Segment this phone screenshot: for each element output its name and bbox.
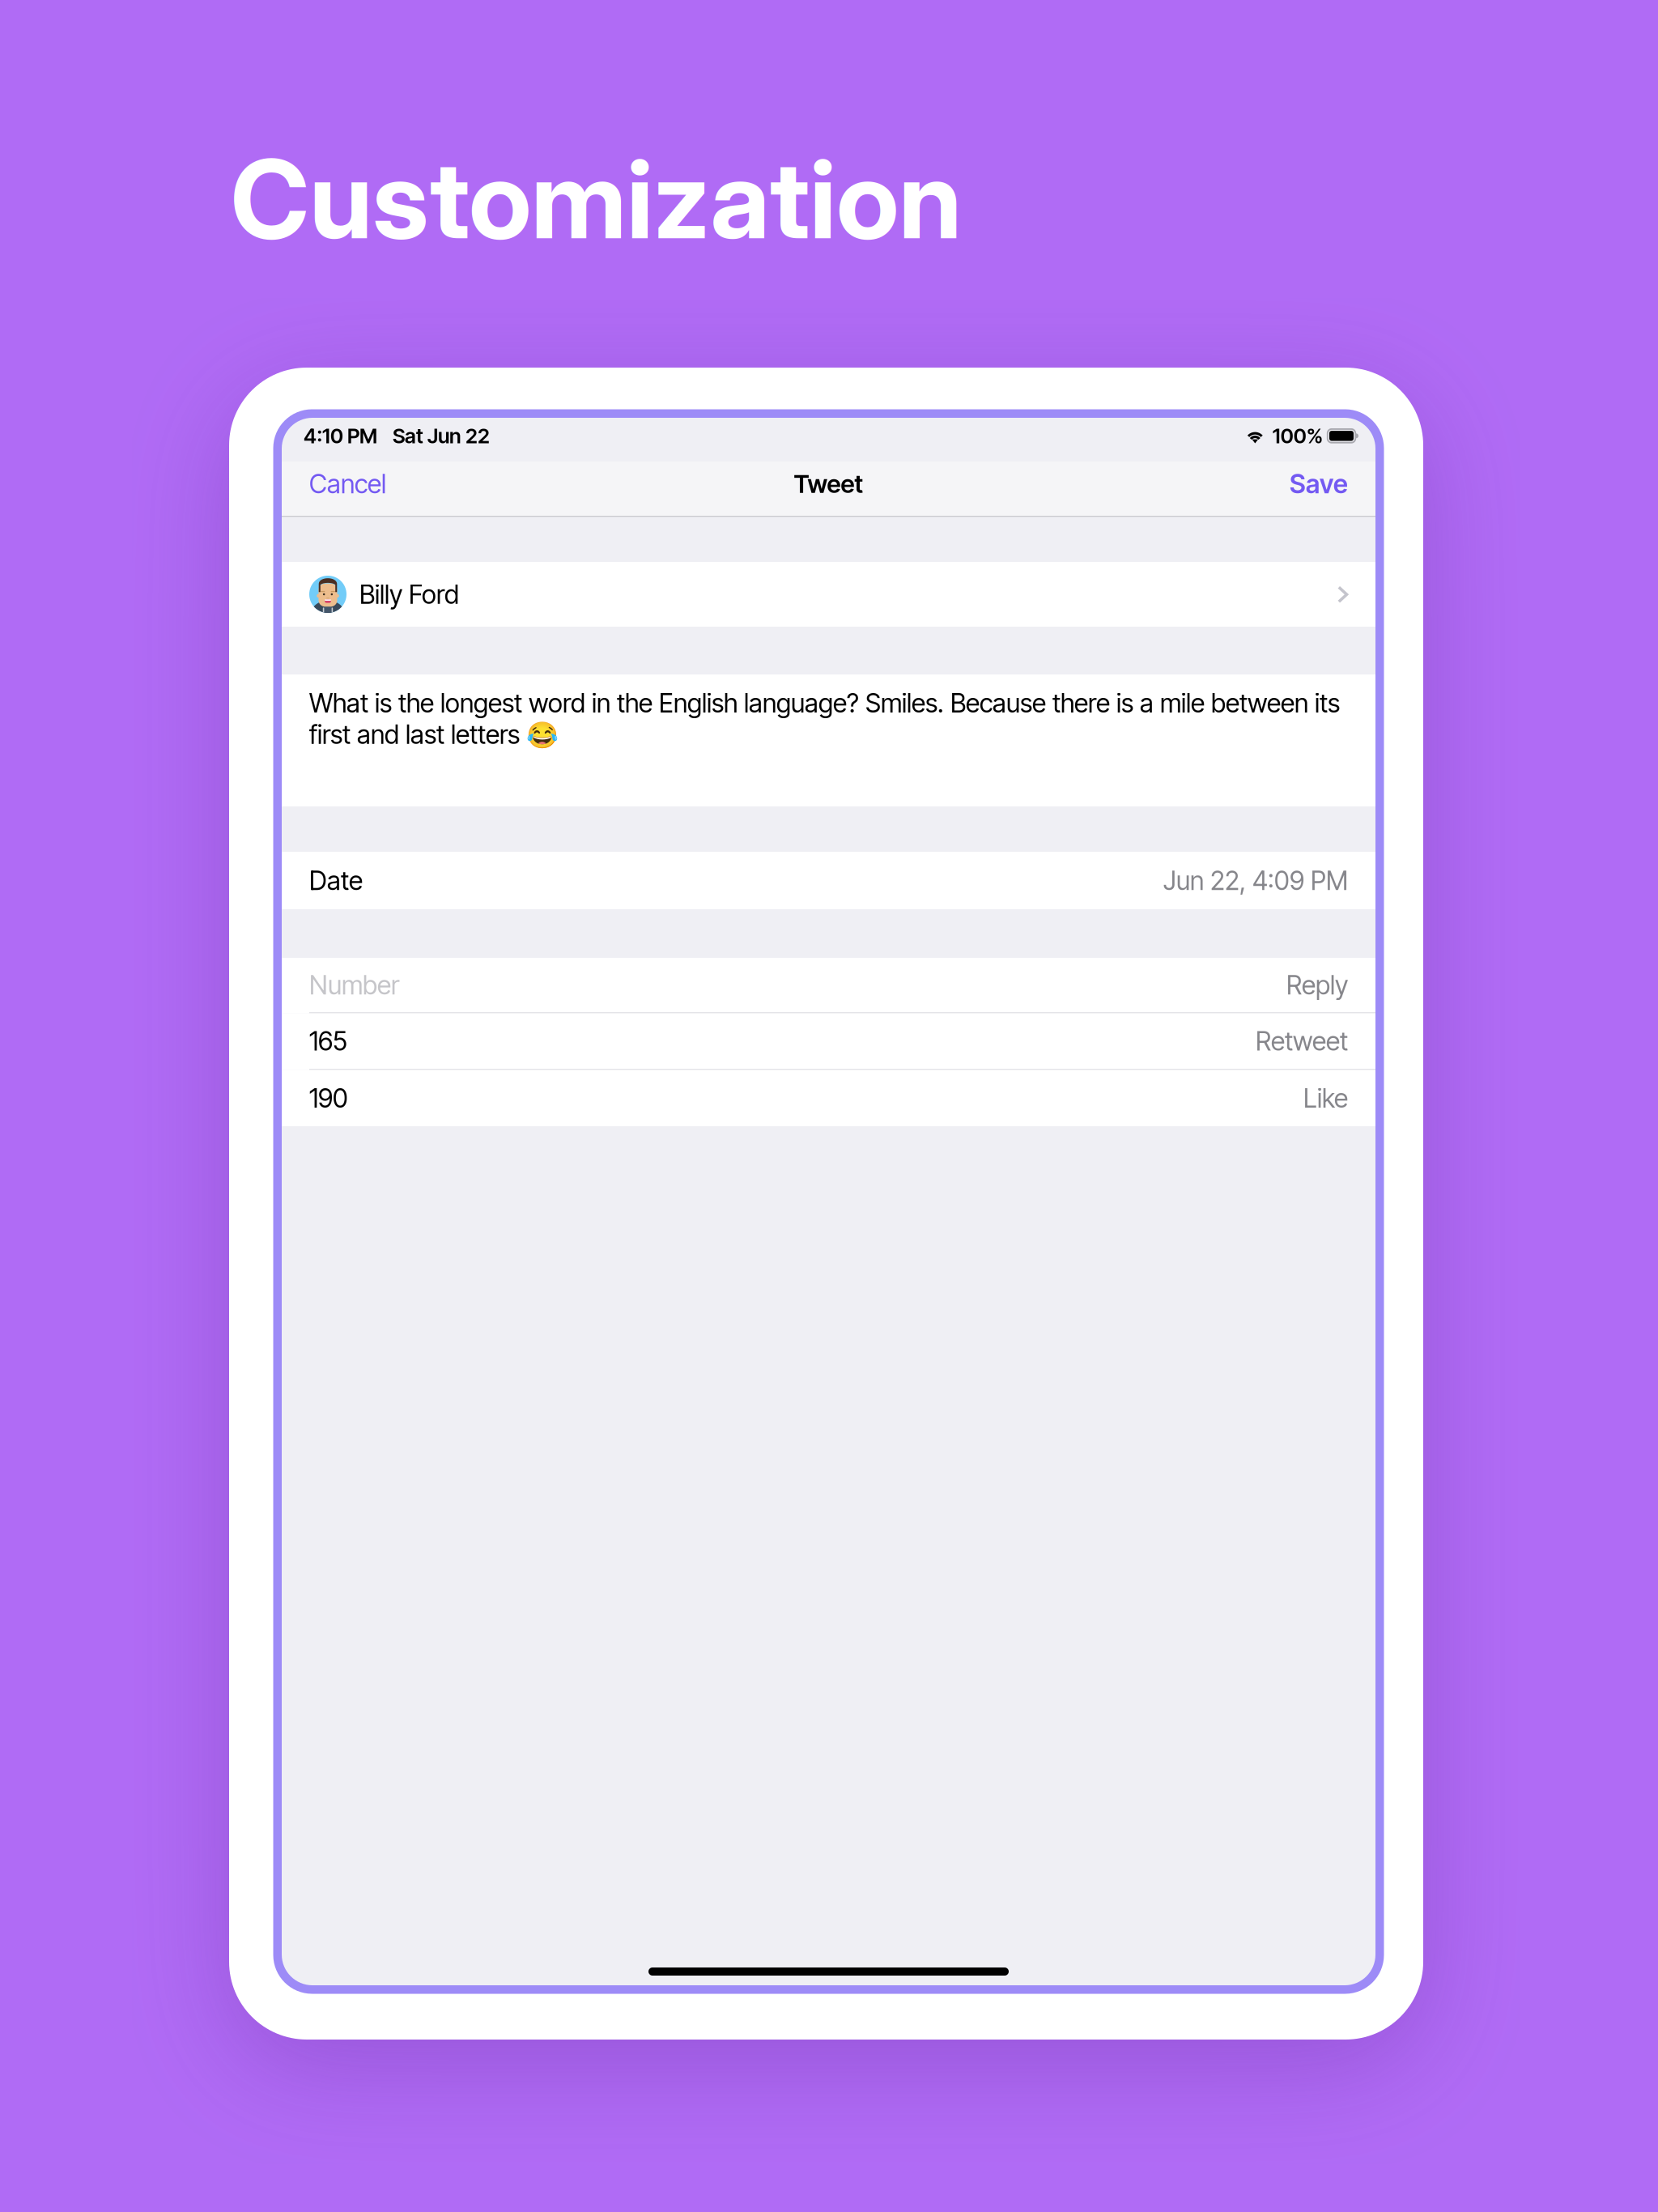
- button[interactable]: Billy Ford: [282, 562, 1375, 627]
- staticText: What is the longest word in the English …: [309, 687, 1340, 750]
- button[interactable]: Number: [282, 958, 1375, 1012]
- staticText: Sat Jun 22: [393, 423, 490, 448]
- button[interactable]: 165: [282, 1013, 1375, 1069]
- staticText: Jun 22, 4:09 PM: [1163, 865, 1348, 896]
- staticText: Reply: [1286, 969, 1348, 1001]
- staticText: Number: [309, 969, 399, 1001]
- button[interactable]: Save: [1277, 462, 1375, 516]
- staticText: Billy Ford: [359, 579, 459, 610]
- staticText: Customization: [231, 134, 962, 264]
- staticText: Tweet: [794, 469, 863, 499]
- staticText: Save: [1290, 468, 1348, 499]
- button[interactable]: Cancel: [282, 462, 399, 516]
- staticText: Cancel: [309, 468, 386, 499]
- staticText: 4:10 PM: [304, 423, 377, 448]
- button[interactable]: 190: [282, 1070, 1375, 1126]
- staticText: 165: [309, 1025, 347, 1057]
- staticText: 190: [309, 1082, 348, 1114]
- staticText: Retweet: [1256, 1025, 1348, 1057]
- button[interactable]: Date: [282, 852, 1375, 909]
- staticText: Date: [309, 865, 363, 896]
- staticText: Like: [1303, 1082, 1348, 1114]
- staticText: 100%: [1272, 423, 1323, 448]
